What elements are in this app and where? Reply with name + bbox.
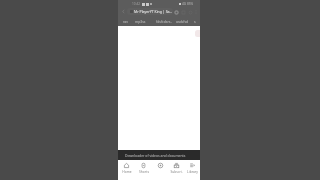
button[interactable]: Subscri. <box>168 161 184 180</box>
staticText: 10:42 <box>132 2 141 6</box>
staticText: Downloader of videos and documents <box>125 153 186 158</box>
staticText: fdsfcdsrs.. <box>156 19 173 24</box>
button[interactable]: asdsfsd <box>176 17 189 26</box>
button[interactable]: Home <box>118 161 135 180</box>
staticText: asdsfsd <box>176 19 189 24</box>
staticText: s <box>194 19 196 24</box>
staticText: 4G 85% <box>182 2 194 6</box>
staticText: Mr PlayerYT King | Sa… <box>134 9 173 14</box>
button[interactable]: Tabs <box>173 9 179 15</box>
button[interactable]: Shorts <box>135 161 152 180</box>
staticText: mp3ss <box>135 19 146 24</box>
staticText: Library <box>187 169 198 173</box>
button[interactable]: s <box>194 17 196 26</box>
button[interactable]: fdsfcdsrs.. <box>156 17 173 26</box>
staticText: Home <box>122 169 132 173</box>
button[interactable]: Mr PlayerYT King | Sa… <box>127 8 173 15</box>
staticText: rav <box>123 19 128 24</box>
staticText: Subscri. <box>170 169 183 173</box>
button[interactable]: Create <box>152 161 168 180</box>
button[interactable]: mp3ss <box>135 17 146 26</box>
button[interactable]: Library <box>184 161 200 180</box>
staticText: Shorts <box>139 169 149 173</box>
button[interactable]: rav <box>123 17 128 26</box>
button[interactable]: Back <box>120 8 127 15</box>
